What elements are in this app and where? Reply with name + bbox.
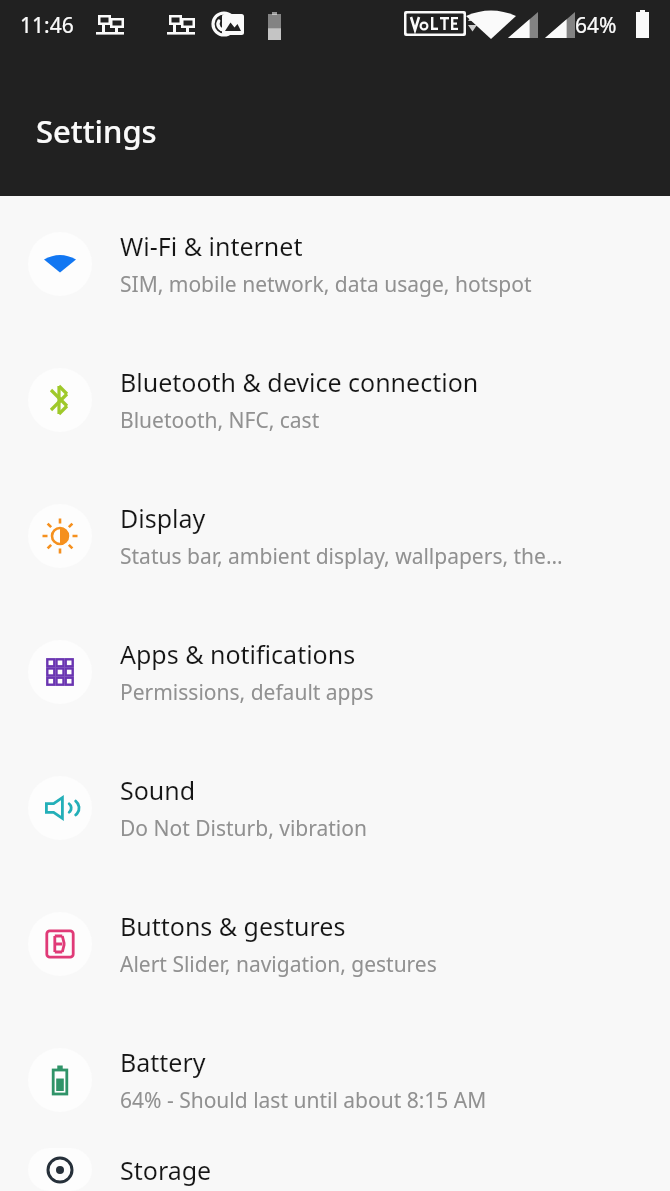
staticText: Alert Slider, navigation, gestures [120,950,437,979]
staticText: Status bar, ambient display, wallpapers,… [120,542,563,571]
staticText: Battery [120,1045,206,1079]
staticText: 11:46 [20,11,74,40]
staticText: 64% [575,11,617,40]
button[interactable]: Sound [0,740,670,876]
staticText: Settings [36,110,157,152]
staticText: Permissions, default apps [120,678,374,707]
button[interactable]: Storage [0,1148,670,1191]
staticText: Apps & notifications [120,637,356,671]
button[interactable]: Wi-Fi & internet [0,196,670,332]
button[interactable]: Apps & notifications [0,604,670,740]
button[interactable]: Buttons & gestures [0,876,670,1012]
button[interactable]: Bluetooth & device connection [0,332,670,468]
staticText: Bluetooth & device connection [120,365,479,399]
staticText: Buttons & gestures [120,909,346,943]
staticText: SIM, mobile network, data usage, hotspot [120,270,532,299]
staticText: Sound [120,773,196,807]
staticText: Display [120,501,206,535]
staticText: Wi-Fi & internet [120,229,303,263]
staticText: Bluetooth, NFC, cast [120,406,320,435]
staticText: Storage [120,1153,212,1187]
staticText: Do Not Disturb, vibration [120,814,367,843]
button[interactable]: Display [0,468,670,604]
staticText: 64% - Should last until about 8:15 AM [120,1086,487,1115]
button[interactable]: Battery [0,1012,670,1148]
